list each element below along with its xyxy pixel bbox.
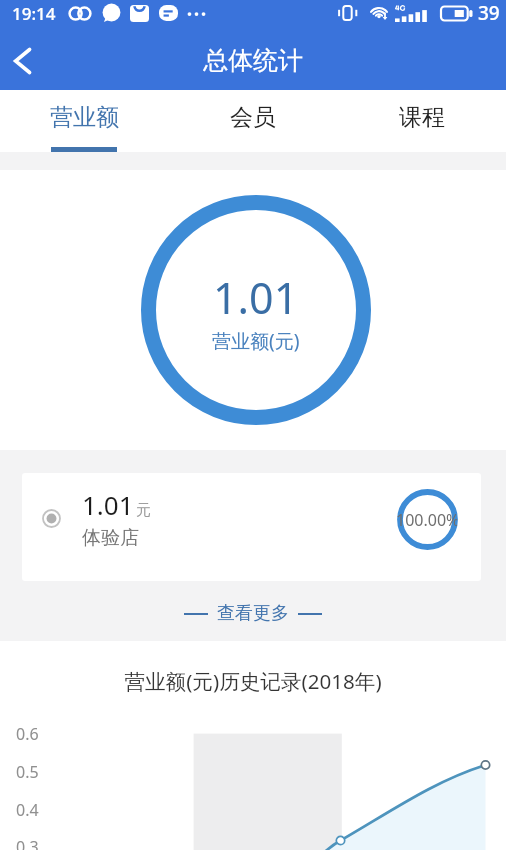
staticText: 查看更多 [217,602,289,625]
staticText: 营业额(元)历史记录(2018年) [0,667,506,695]
staticText: 0.5 [16,761,39,783]
button[interactable]: 会员 [168,90,337,152]
other: Wi-Fi [369,5,389,21]
staticText: 100.00% [396,509,457,531]
staticText: 1.01 [213,268,299,327]
staticText: 0.3 [16,836,39,850]
button[interactable]: 营业额 [0,90,168,152]
other: Vibrate mode [337,5,358,21]
staticText: 会员 [230,103,276,132]
staticText: 营业额 [50,103,119,132]
other: 4G signal [395,5,431,22]
staticText: 19:14 [12,2,56,25]
staticText: 0.6 [16,723,39,745]
button[interactable]: 课程 [337,90,506,152]
staticText: 元 [136,501,151,520]
staticText: 营业额(元) [212,328,300,354]
button[interactable]: 查看更多 [184,602,322,625]
button[interactable]: Back [0,31,48,90]
staticText: 0.4 [16,799,39,821]
staticText: 1.01 [82,487,134,522]
staticText: 课程 [399,103,445,132]
staticText: 总体统计 [203,45,303,76]
button[interactable]: 1.01 [22,473,481,581]
staticText: 39 [478,0,500,26]
other: Battery 39 percent [440,5,473,22]
staticText: 体验店 [82,526,139,550]
